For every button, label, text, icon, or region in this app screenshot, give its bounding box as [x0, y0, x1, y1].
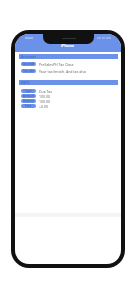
button[interactable]: INFO [19, 80, 118, 85]
staticText: Tax rate [23, 69, 35, 73]
button[interactable]: Tax rate [21, 69, 118, 73]
staticText: Your tax length. And tax also [39, 69, 87, 73]
staticText: Accounts [21, 54, 36, 59]
staticText: +0.00 [39, 104, 48, 108]
button[interactable]: Balance [21, 99, 118, 103]
staticText: PreSalesPH Tax Class [39, 62, 74, 66]
staticText: Tax code [22, 62, 35, 66]
button[interactable]: Amount [21, 94, 118, 98]
staticText: Balance [23, 99, 35, 103]
button[interactable]: Tax code [21, 62, 118, 66]
staticText: iPhone [61, 43, 75, 48]
button[interactable]: Paid [21, 104, 118, 108]
staticText: 100.00 [39, 99, 50, 103]
staticText: 100.00 [39, 94, 50, 98]
staticText: Amount [23, 94, 35, 98]
button[interactable]: Type [21, 89, 118, 93]
staticText: INFO [21, 80, 30, 85]
staticText: Paid [25, 104, 32, 108]
other: Notch [43, 30, 94, 44]
staticText: Type [25, 89, 32, 93]
staticText: Due Tax [39, 89, 53, 93]
button[interactable]: Accounts [19, 54, 118, 59]
